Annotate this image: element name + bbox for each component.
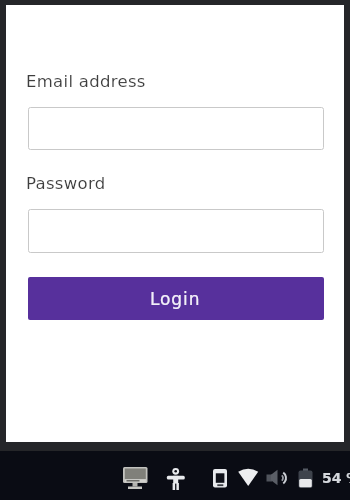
staticText: Login [150,289,201,309]
button[interactable] [28,107,324,150]
button[interactable]: Login [28,277,324,320]
button[interactable] [28,209,324,253]
staticText: Email address [26,72,146,91]
staticText: 54 % [322,470,350,486]
staticText: Password [26,174,106,193]
